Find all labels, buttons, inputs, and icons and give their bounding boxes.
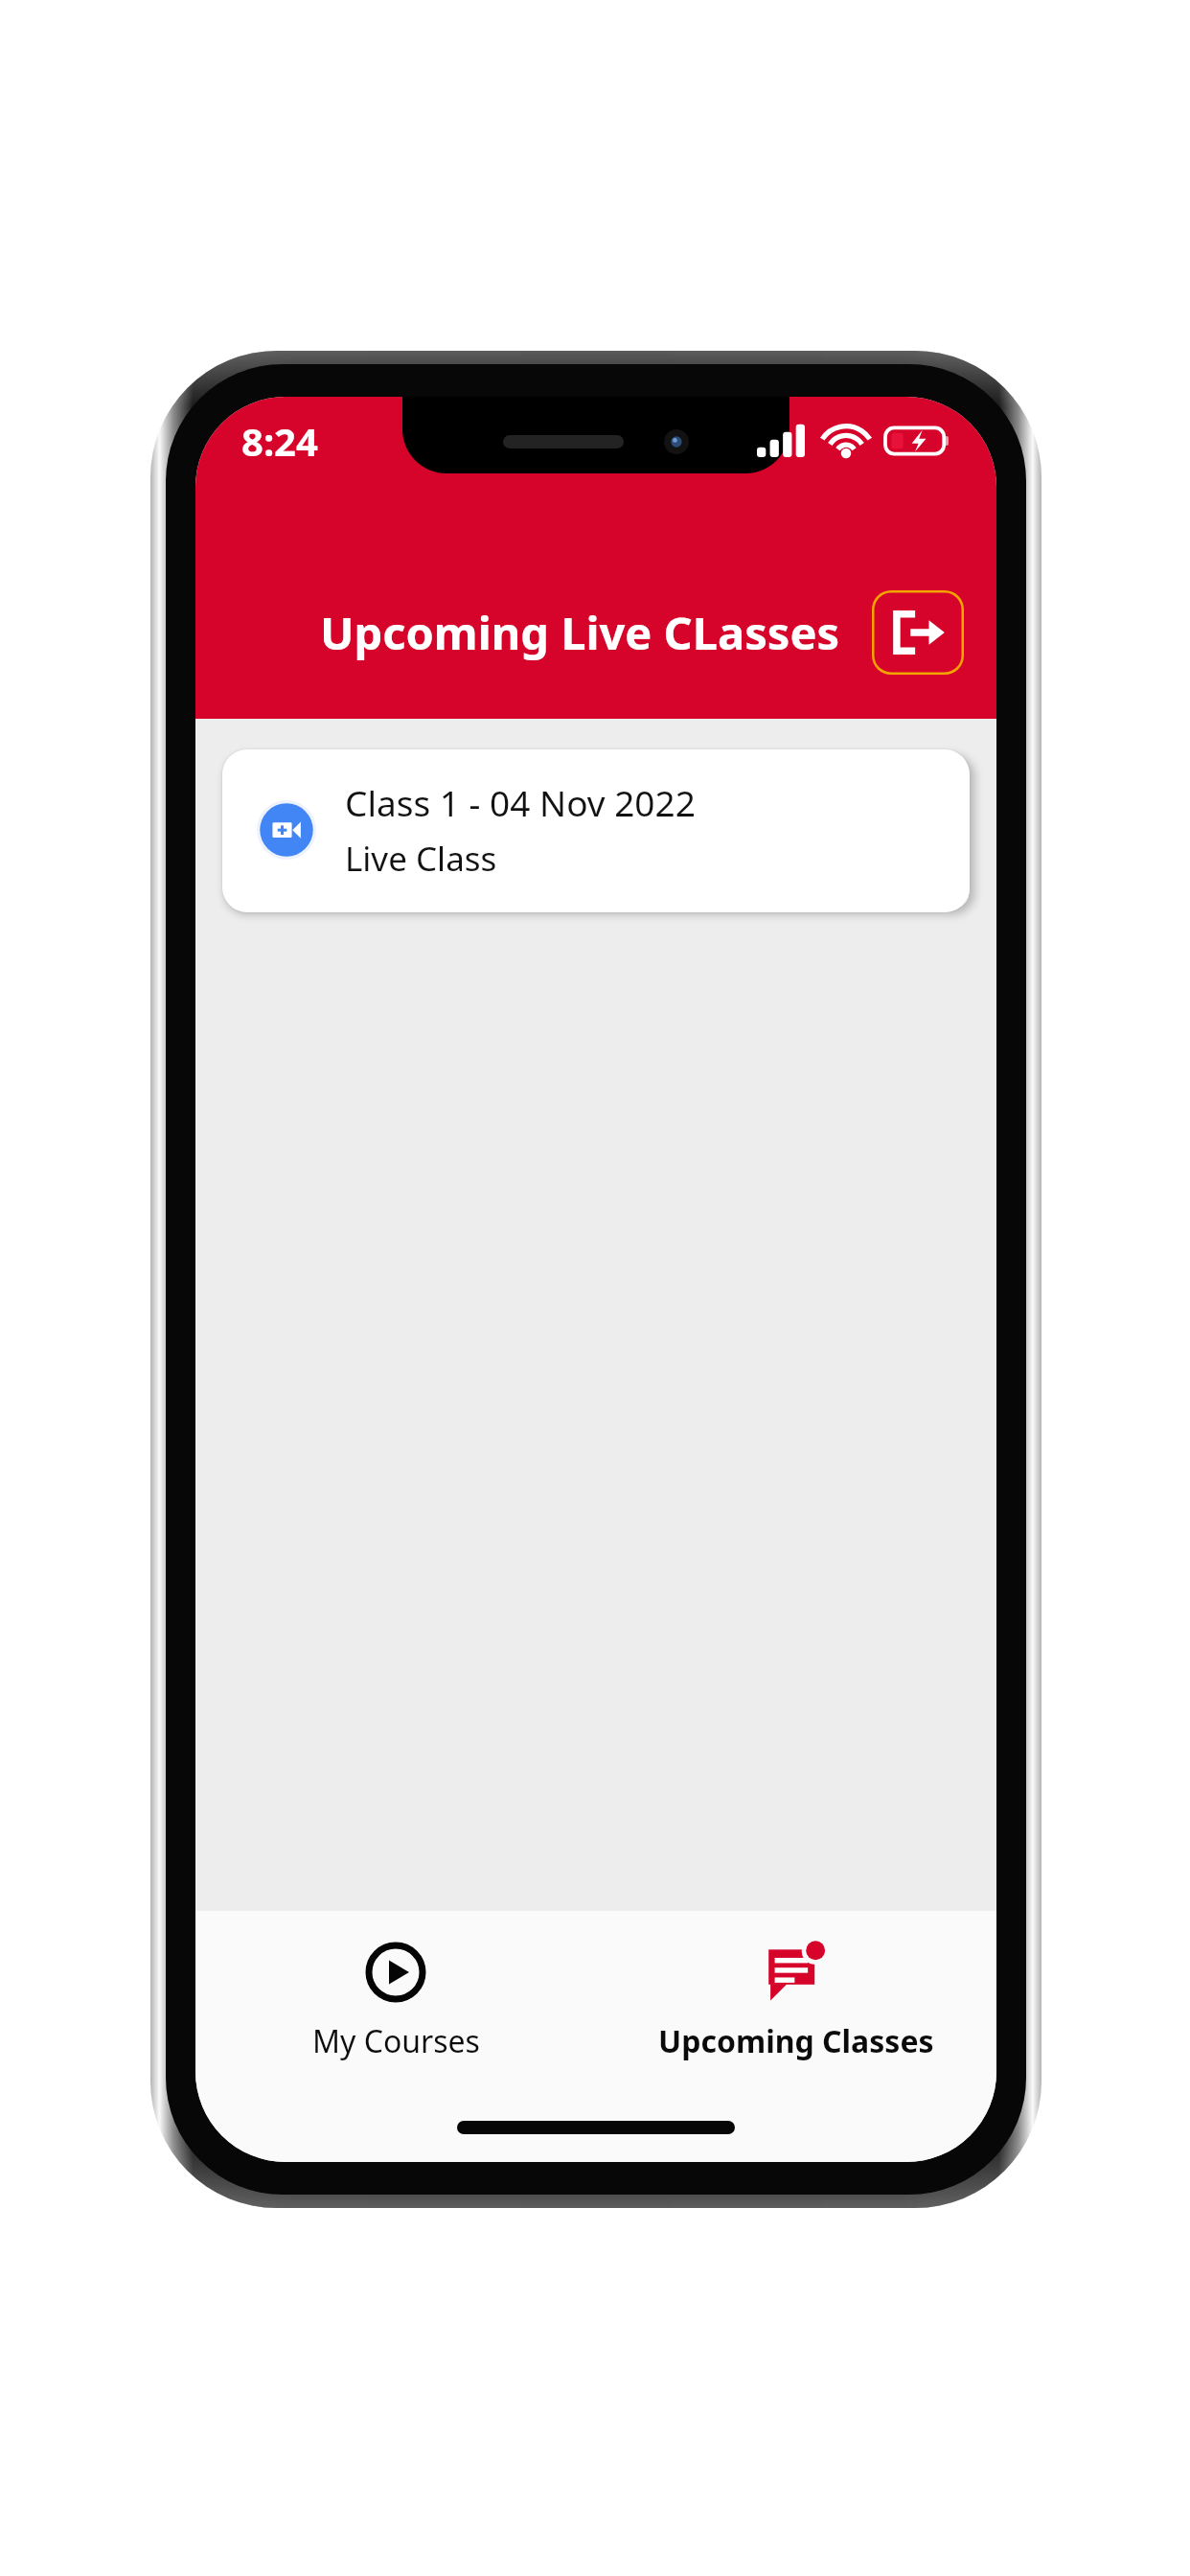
staticText: 8:24 [241, 415, 318, 467]
staticText: Live Class [345, 836, 497, 882]
staticText: Upcoming Live CLasses [287, 602, 872, 663]
button[interactable]: My Courses [195, 1911, 596, 2093]
button[interactable]: Logout [872, 590, 964, 675]
button[interactable]: Class 1 - 04 Nov 2022 [222, 749, 970, 912]
staticText: My Courses [312, 2020, 480, 2062]
button[interactable]: Upcoming Classes [596, 1911, 996, 2093]
staticText: Class 1 - 04 Nov 2022 [345, 778, 696, 826]
staticText: Upcoming Classes [658, 2020, 934, 2062]
